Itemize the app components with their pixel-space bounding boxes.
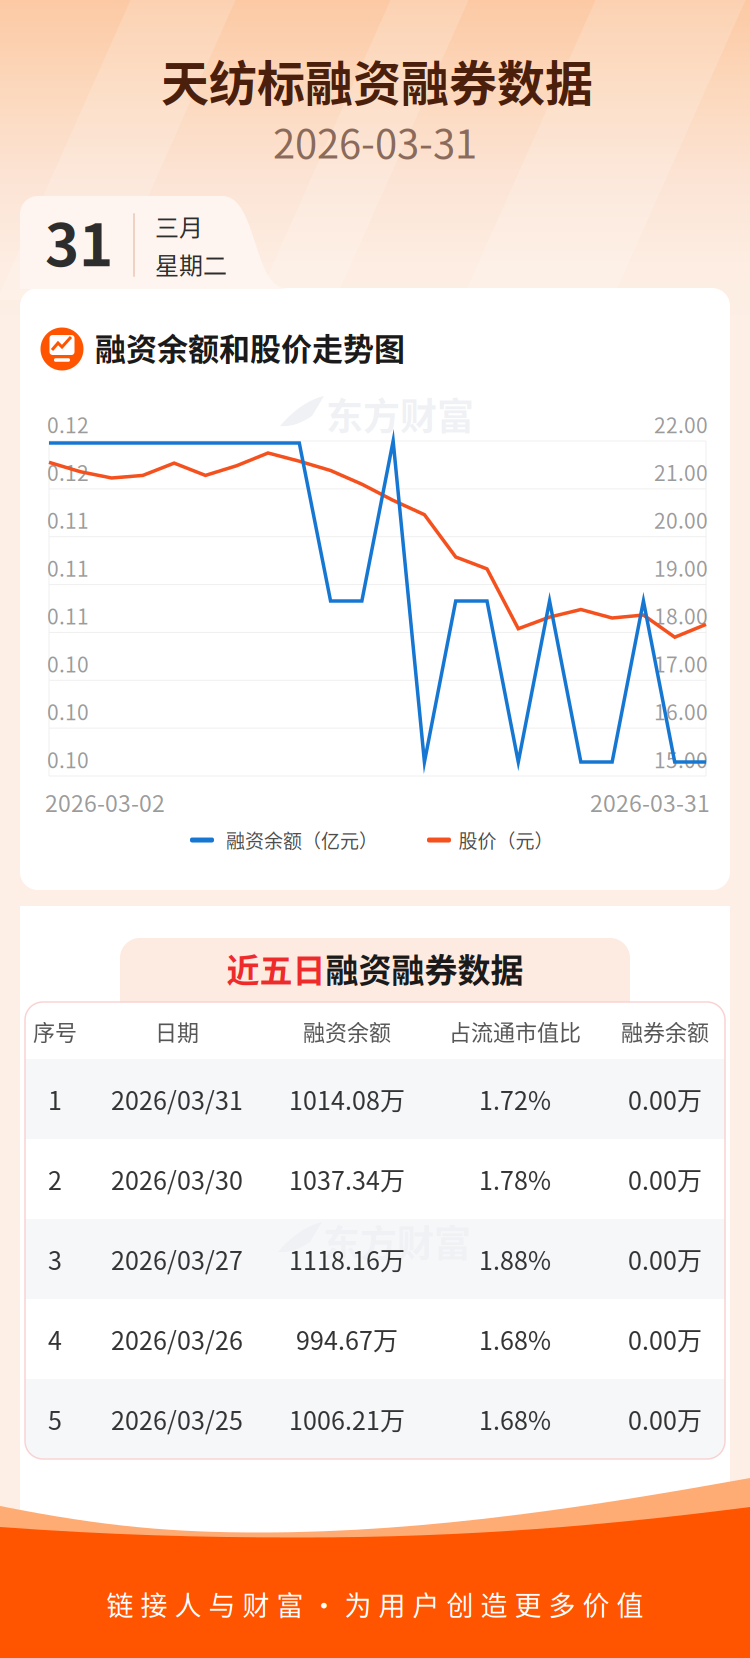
staticText: 0.11 — [47, 552, 89, 583]
staticText: 3 — [48, 1241, 62, 1277]
staticText: 占流通市值比 — [449, 1015, 581, 1047]
staticText: 2 — [48, 1161, 62, 1197]
staticText: 2026/03/27 — [111, 1241, 243, 1277]
staticText: 1.72% — [479, 1081, 551, 1117]
staticText: 2026-03-31 — [590, 785, 710, 819]
staticText: 1.68% — [479, 1321, 551, 1357]
staticText: 1037.34万 — [289, 1161, 405, 1197]
staticText: 序号 — [33, 1015, 77, 1047]
staticText: 1 — [48, 1081, 62, 1117]
staticText: 0.00万 — [628, 1401, 702, 1437]
staticText: 2026/03/30 — [111, 1161, 243, 1197]
staticText: 0.10 — [47, 744, 89, 774]
staticText: 融资余额 — [303, 1015, 391, 1047]
staticText: 融资余额和股价走势图 — [95, 325, 405, 369]
staticText: 0.12 — [47, 409, 89, 439]
staticText: 19.00 — [654, 552, 708, 583]
staticText: 东方财富 — [326, 387, 474, 441]
staticText: 三月 — [155, 209, 203, 243]
staticText: 2026-03-02 — [45, 785, 165, 819]
staticText: 20.00 — [654, 504, 708, 535]
staticText: 近五日 — [226, 944, 325, 992]
staticText: 链接人与财富·为用户创造更多价值 — [106, 1584, 643, 1624]
staticText: 东方财富 — [323, 1214, 471, 1268]
staticText: 融券余额 — [621, 1015, 709, 1047]
staticText: 天纺标融资融券数据 — [161, 45, 593, 115]
staticText: 17.00 — [654, 648, 708, 678]
staticText: 16.00 — [654, 696, 708, 726]
staticText: 2026/03/31 — [111, 1081, 243, 1117]
staticText: 21.00 — [654, 457, 708, 487]
staticText: 星期二 — [155, 247, 227, 281]
staticText: 0.10 — [47, 696, 89, 726]
staticText: 0.00万 — [628, 1241, 702, 1277]
staticText: 1014.08万 — [289, 1081, 405, 1117]
staticText: 5 — [48, 1401, 62, 1437]
staticText: 22.00 — [654, 409, 708, 439]
staticText: 1006.21万 — [289, 1401, 405, 1437]
staticText: 4 — [48, 1321, 62, 1357]
staticText: 994.67万 — [296, 1321, 398, 1357]
staticText: 15.00 — [654, 744, 708, 774]
staticText: 1.68% — [479, 1401, 551, 1437]
staticText: 18.00 — [654, 600, 708, 631]
staticText: 0.11 — [47, 600, 89, 631]
staticText: 1118.16万 — [289, 1241, 405, 1277]
staticText: 0.00万 — [628, 1081, 702, 1117]
staticText: 0.00万 — [628, 1321, 702, 1357]
staticText: 融资融券数据 — [325, 944, 523, 992]
staticText: 0.10 — [47, 648, 89, 678]
staticText: 2026-03-31 — [273, 112, 477, 170]
staticText: 0.11 — [47, 504, 89, 535]
staticText: 0.12 — [47, 457, 89, 487]
staticText: 2026/03/26 — [111, 1321, 243, 1357]
staticText: 2026/03/25 — [111, 1401, 243, 1437]
staticText: 日期 — [155, 1015, 199, 1047]
staticText: 股价（元） — [458, 826, 553, 854]
staticText: 0.00万 — [628, 1161, 702, 1197]
staticText: 1.78% — [479, 1161, 551, 1197]
staticText: 1.88% — [479, 1241, 551, 1277]
staticText: 融资余额（亿元） — [226, 826, 378, 854]
staticText: 31 — [45, 199, 113, 283]
